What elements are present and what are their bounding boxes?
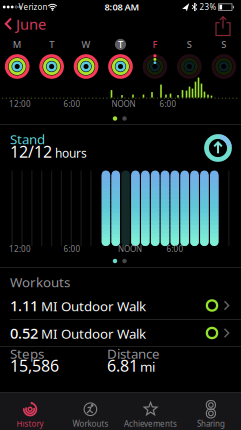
button[interactable]: 0.52: [0, 319, 241, 347]
staticText: 6:00: [159, 99, 176, 109]
staticText: 1.11: [10, 296, 38, 315]
staticText: Steps: [10, 345, 44, 362]
button[interactable]: Sharing: [181, 392, 241, 430]
button[interactable]: S: [172, 36, 207, 84]
staticText: NOON: [111, 99, 135, 109]
button[interactable]: Achievements: [121, 392, 181, 430]
staticText: 12:00: [9, 244, 31, 254]
staticText: 12:00: [9, 99, 31, 109]
button[interactable]: June: [5, 14, 57, 34]
staticText: NOON: [118, 244, 142, 254]
staticText: MI Outdoor Walk: [41, 297, 146, 315]
button[interactable]: 1.11: [0, 291, 241, 319]
staticText: 6:00: [63, 244, 80, 254]
staticText: 6:00: [166, 244, 183, 254]
button[interactable]: [215, 15, 231, 36]
button[interactable]: F: [138, 36, 172, 84]
staticText: Verizon: [18, 2, 47, 12]
staticText: 15,586: [10, 355, 59, 376]
button[interactable]: [202, 132, 234, 164]
staticText: June: [16, 14, 46, 34]
button[interactable]: T: [34, 36, 69, 84]
staticText: 6.81: [107, 355, 138, 376]
staticText: 0.52: [10, 323, 38, 343]
staticText: Workouts: [72, 418, 108, 429]
staticText: MI Outdoor Walk: [41, 325, 146, 342]
staticText: History: [17, 418, 44, 429]
staticText: S: [221, 38, 226, 51]
staticText: 6:00: [63, 99, 80, 109]
staticText: Achievements: [124, 418, 177, 429]
staticText: Stand: [10, 130, 45, 148]
button[interactable]: Workouts: [60, 392, 120, 430]
button[interactable]: T: [103, 36, 138, 84]
staticText: mi: [140, 358, 155, 375]
staticText: M: [13, 38, 22, 51]
staticText: Workouts: [10, 273, 70, 291]
staticText: T: [49, 38, 54, 51]
staticText: W: [82, 38, 91, 51]
button[interactable]: M: [0, 36, 34, 84]
staticText: F: [152, 38, 157, 51]
staticText: Sharing: [197, 418, 225, 429]
button[interactable]: History: [0, 392, 60, 430]
staticText: 23%: [199, 2, 216, 12]
staticText: 12/12: [10, 141, 52, 162]
staticText: hours: [55, 145, 87, 161]
staticText: S: [187, 38, 192, 51]
staticText: Distance: [107, 345, 160, 362]
button[interactable]: W: [69, 36, 103, 84]
button[interactable]: S: [207, 36, 241, 84]
staticText: T: [118, 38, 123, 51]
staticText: 8:08 AM: [104, 1, 139, 13]
